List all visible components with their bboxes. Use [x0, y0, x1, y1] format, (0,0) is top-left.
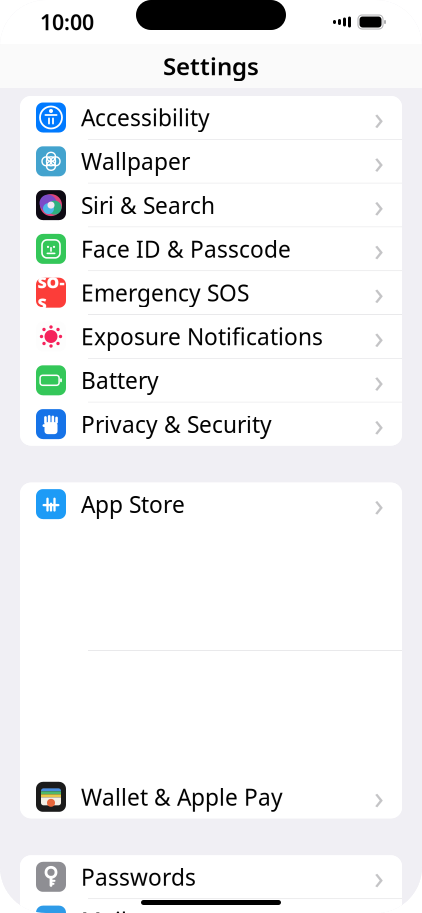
staticText: ›	[374, 96, 384, 139]
staticText: ›	[374, 315, 384, 358]
button[interactable]: Siri & Search	[20, 184, 402, 227]
button[interactable]: Privacy & Security	[20, 403, 402, 446]
staticText: App Store	[81, 489, 185, 519]
button[interactable]: Wallpaper	[20, 140, 402, 184]
staticText: ›	[374, 140, 384, 183]
staticText: Exposure Notifications	[81, 321, 323, 351]
staticText: Privacy & Security	[81, 409, 272, 439]
button[interactable]: Exposure Notifications	[20, 315, 402, 359]
staticText: Battery	[81, 365, 159, 395]
staticText: ›	[374, 483, 384, 525]
staticText: ›	[374, 856, 384, 898]
staticText: ›	[374, 184, 384, 226]
button[interactable]: Face ID & Passcode	[20, 227, 402, 271]
button[interactable]: Mail	[20, 899, 402, 913]
staticText: ›	[374, 271, 384, 314]
staticText: 10:00	[40, 8, 94, 36]
staticText: Siri & Search	[81, 190, 215, 220]
staticText: Emergency SOS	[81, 278, 249, 308]
staticText: Mail	[81, 906, 127, 913]
staticText: Wallet & Apple Pay	[81, 782, 283, 812]
staticText: ›	[374, 228, 384, 270]
button[interactable]: Battery	[20, 359, 402, 403]
staticText: Wallpaper	[81, 146, 190, 176]
staticText: ›	[374, 776, 384, 818]
staticText: SOS	[37, 271, 64, 314]
staticText: Settings	[163, 50, 259, 82]
button[interactable]: Passwords	[20, 855, 402, 899]
staticText: Passwords	[81, 862, 196, 892]
button[interactable]: Accessibility	[20, 96, 402, 140]
staticText: ›	[374, 403, 384, 445]
button[interactable]: SOS	[20, 271, 402, 315]
staticText: Face ID & Passcode	[81, 234, 291, 264]
button[interactable]: Wallet & Apple Pay	[20, 775, 402, 818]
staticText: ›	[374, 359, 384, 402]
staticText: Accessibility	[81, 102, 210, 132]
button[interactable]: App Store	[20, 483, 402, 775]
